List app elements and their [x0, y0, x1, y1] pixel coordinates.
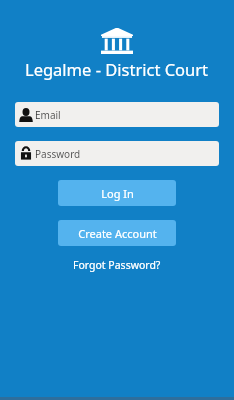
- button[interactable]: Forgot Password?: [67, 256, 167, 274]
- staticText: Legalme - District Court: [25, 58, 209, 80]
- button[interactable]: Log In: [58, 180, 176, 206]
- button[interactable]: Email: [15, 102, 219, 127]
- button[interactable]: Create Account: [58, 220, 176, 246]
- staticText: Create Account: [78, 226, 157, 241]
- staticText: Forgot Password?: [73, 258, 161, 272]
- button[interactable]: Password: [15, 141, 219, 166]
- staticText: Log In: [101, 186, 134, 201]
- other: District Court logo: [101, 28, 133, 54]
- staticText: Email: [35, 108, 61, 122]
- staticText: Password: [35, 147, 81, 161]
